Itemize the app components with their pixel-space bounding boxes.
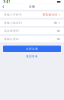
button[interactable]: 返回登录: [23, 54, 41, 59]
button[interactable]: 立即注册: [3, 46, 61, 52]
button[interactable]: Back: [0, 4, 7, 10]
staticText: 立即注册: [26, 47, 38, 50]
staticText: 注册: [29, 5, 35, 8]
staticText: 请设置密码: [4, 29, 19, 33]
staticText: 请输入手机号: [4, 13, 22, 16]
button[interactable]: Show password: [57, 29, 60, 32]
button[interactable]: Confirm password visibility: [57, 38, 60, 40]
staticText: 请确认密码: [4, 37, 19, 41]
staticText: 请输入验证码: [4, 21, 22, 24]
staticText: 9:41: [3, 0, 10, 3]
staticText: 返回登录: [26, 55, 38, 58]
staticText: 获取验证码: [42, 13, 57, 16]
button[interactable]: 获取验证码: [42, 13, 57, 16]
button[interactable]: Show code: [54, 21, 57, 24]
